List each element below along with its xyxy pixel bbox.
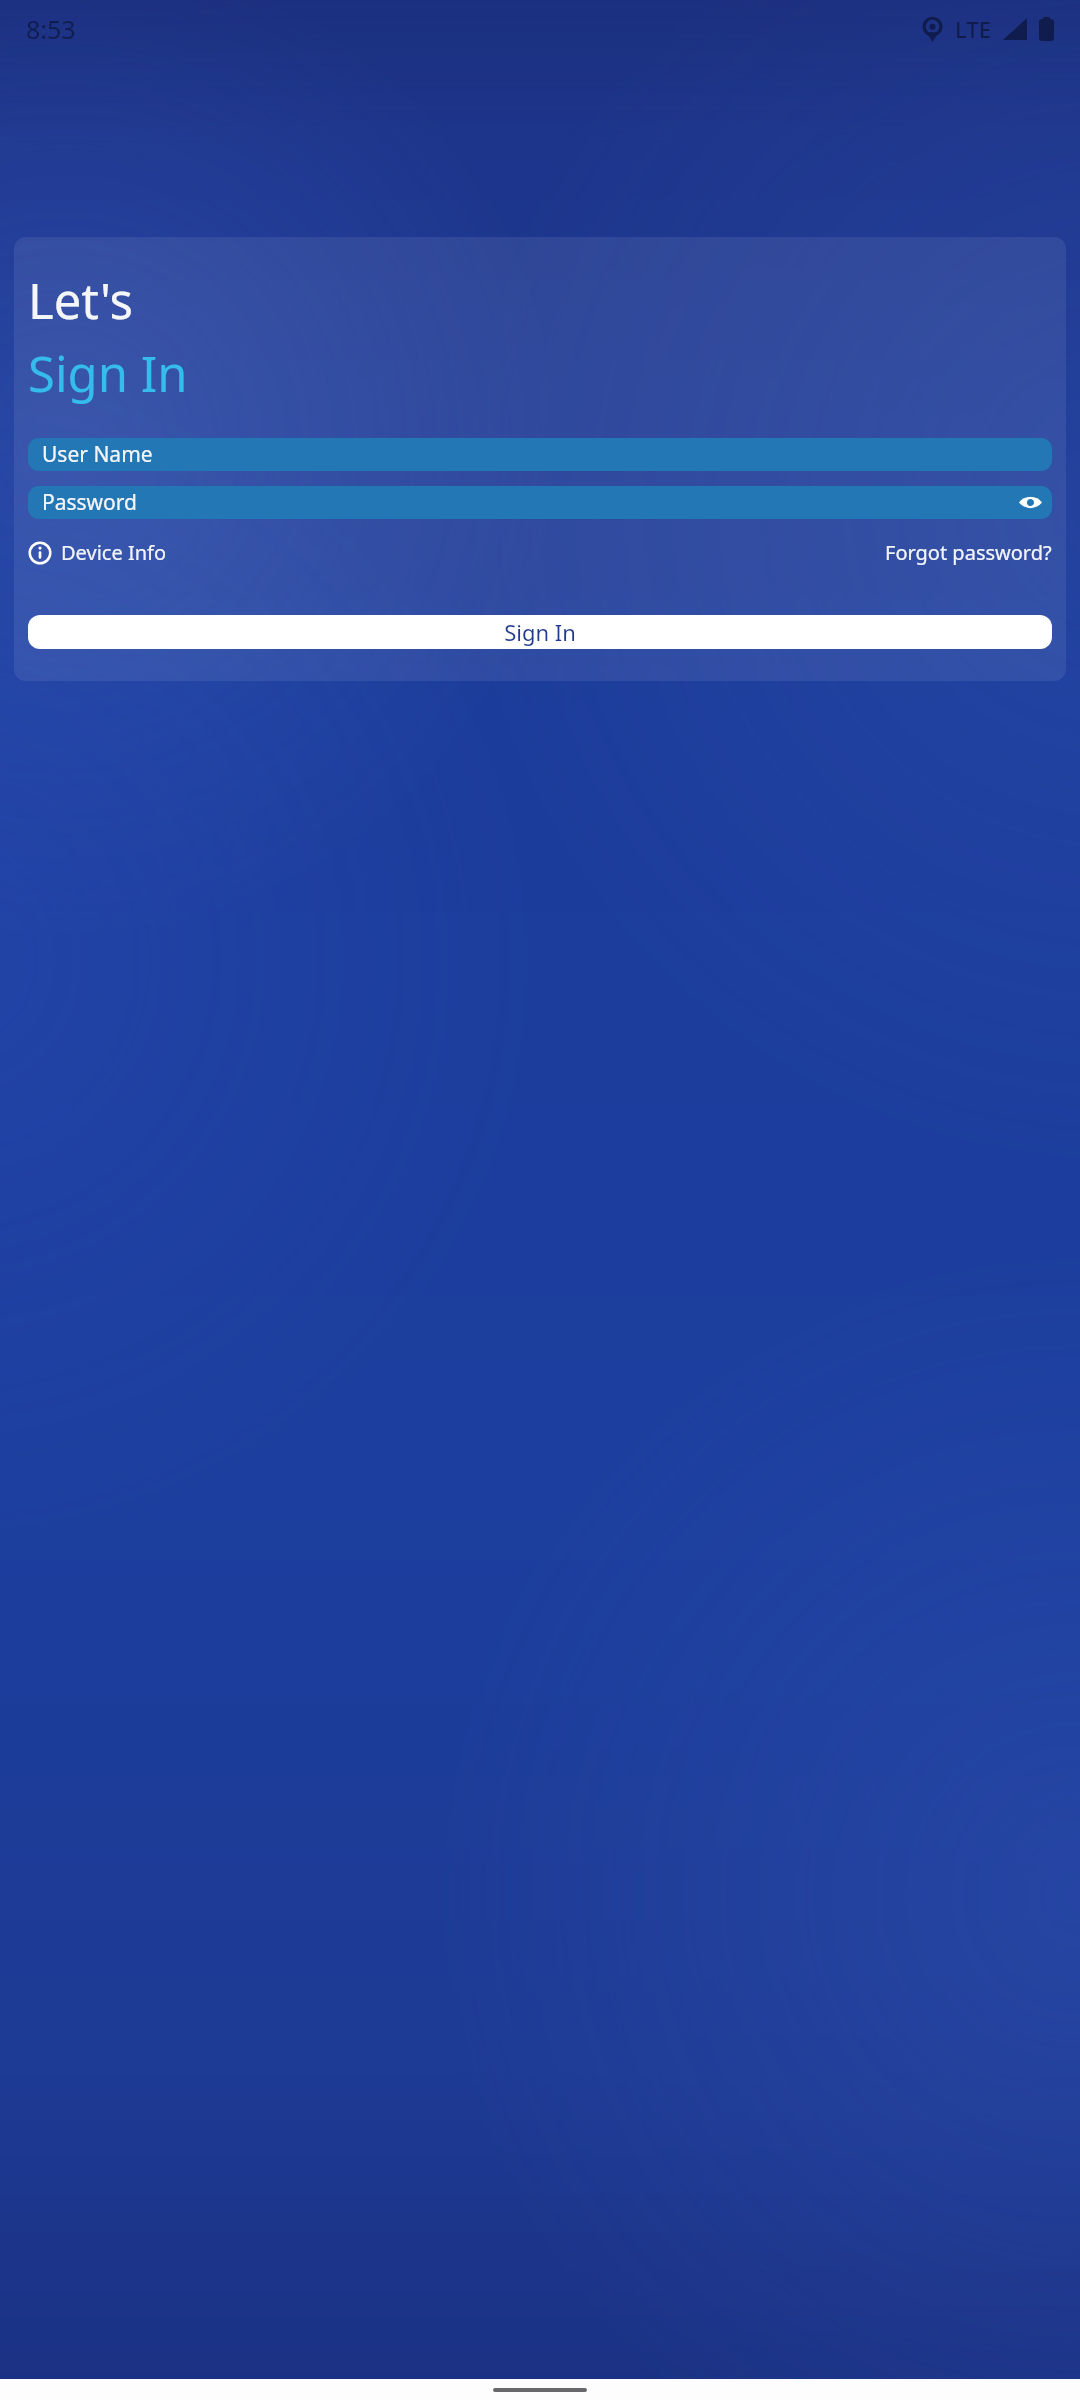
staticText: Forgot password? bbox=[885, 539, 1052, 566]
button[interactable]: Device Info bbox=[28, 535, 166, 570]
staticText: Let's bbox=[28, 267, 134, 334]
button[interactable]: Password bbox=[28, 486, 1052, 519]
staticText: 8:53 bbox=[26, 12, 76, 46]
staticText: Sign In bbox=[28, 340, 188, 407]
staticText: Sign In bbox=[504, 617, 576, 647]
button[interactable]: Show password bbox=[1008, 486, 1052, 519]
button[interactable]: Forgot password? bbox=[885, 535, 1052, 570]
staticText: LTE bbox=[955, 14, 991, 44]
button[interactable]: Sign In bbox=[28, 615, 1052, 649]
staticText: Password bbox=[42, 488, 137, 517]
button[interactable]: User Name bbox=[28, 438, 1052, 471]
staticText: User Name bbox=[42, 440, 153, 469]
staticText: Device Info bbox=[61, 539, 166, 566]
